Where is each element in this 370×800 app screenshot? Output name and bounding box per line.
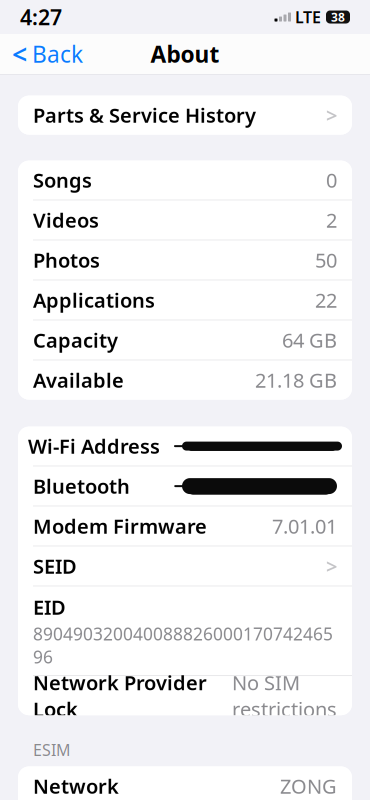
staticText: Capacity xyxy=(33,327,118,353)
staticText: < xyxy=(12,36,27,72)
button[interactable]: Modem Firmware xyxy=(18,507,352,546)
staticText: Videos xyxy=(33,207,99,233)
staticText: Available xyxy=(33,367,124,393)
staticText: Parts & Service History xyxy=(33,102,256,128)
staticText: 0 xyxy=(326,167,337,193)
staticText: 2 xyxy=(326,207,337,233)
staticText: 7.01.01 xyxy=(272,513,337,539)
staticText: SEID xyxy=(33,553,77,579)
staticText: > xyxy=(326,102,337,128)
staticText: Bluetooth xyxy=(33,473,130,499)
staticText: Wi-Fi Address xyxy=(28,433,160,459)
button[interactable]: Available xyxy=(18,361,352,400)
staticText: 50 xyxy=(315,247,337,273)
staticText: EID xyxy=(33,594,66,620)
staticText: 89049032004008882600017074246596 xyxy=(33,622,333,668)
staticText: Network Provider Lock xyxy=(33,669,207,722)
staticText: Modem Firmware xyxy=(33,513,207,539)
staticText: 4:27 xyxy=(20,3,62,31)
button[interactable]: Photos xyxy=(18,241,352,280)
staticText: 38 xyxy=(331,9,345,25)
staticText: Photos xyxy=(33,247,100,273)
staticText: > xyxy=(326,553,337,579)
button[interactable]: EID xyxy=(18,587,352,675)
staticText: No SIM restrictions xyxy=(232,669,337,722)
button[interactable]: Songs xyxy=(18,161,352,200)
staticText: About xyxy=(150,39,219,69)
staticText: Applications xyxy=(33,287,155,313)
staticText: 21.18 GB xyxy=(255,367,337,393)
button[interactable]: Capacity xyxy=(18,321,352,360)
button[interactable]: Bluetooth xyxy=(18,467,352,506)
button[interactable]: SEID xyxy=(18,547,352,586)
button[interactable]: Applications xyxy=(18,281,352,320)
staticText: ZONG xyxy=(280,773,337,799)
button[interactable]: Network Provider Lock xyxy=(18,676,352,715)
staticText: 64 GB xyxy=(282,327,337,353)
button[interactable]: Videos xyxy=(18,201,352,240)
button[interactable]: Parts & Service History xyxy=(18,96,352,135)
staticText: 22 xyxy=(315,287,337,313)
button[interactable]: Wi-Fi Address xyxy=(18,427,352,466)
staticText: Songs xyxy=(33,167,92,193)
button[interactable]: Network xyxy=(18,766,352,800)
staticText: LTE xyxy=(295,6,321,28)
button[interactable]: < xyxy=(0,34,95,74)
staticText: Network xyxy=(33,773,119,799)
staticText: ESIM xyxy=(33,739,71,760)
staticText: Back xyxy=(32,39,83,69)
